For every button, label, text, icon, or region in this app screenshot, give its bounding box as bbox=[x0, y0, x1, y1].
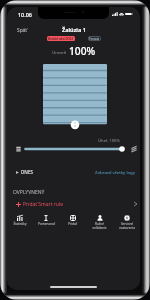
staticText: 100% bbox=[69, 44, 96, 58]
button[interactable]: Blind position bbox=[43, 64, 107, 131]
staticText: 10.06 bbox=[18, 11, 32, 18]
button[interactable]: Pridať Smart rule bbox=[7, 198, 140, 210]
staticText: Terapia bbox=[89, 37, 100, 41]
staticText: Úhel: 100% bbox=[98, 138, 120, 144]
staticText: Pridať Smart rule bbox=[23, 201, 64, 208]
staticText: Žalúzia 1 bbox=[62, 26, 86, 34]
staticText: Štatistiky bbox=[13, 222, 27, 226]
button[interactable]: Detská izba DOLE bbox=[47, 36, 75, 41]
staticText: Servisné nastavenia bbox=[119, 222, 135, 230]
button[interactable]: Servisné nastavenia bbox=[113, 212, 140, 230]
button[interactable]: Pomenovať bbox=[33, 212, 59, 226]
button[interactable]: DNES bbox=[16, 168, 34, 176]
button[interactable]: Slats tilted bbox=[130, 145, 138, 153]
staticText: Pridať bbox=[68, 222, 77, 226]
button[interactable]: Späť bbox=[16, 26, 29, 35]
button[interactable]: Ručné ovládanie bbox=[86, 212, 113, 230]
button[interactable]: Slats closed bbox=[15, 145, 22, 153]
button[interactable]: Štatistiky bbox=[7, 212, 33, 226]
staticText: Ručné ovládanie bbox=[92, 222, 107, 230]
staticText: Pomenovať bbox=[38, 222, 55, 226]
staticText: DNES bbox=[21, 169, 34, 175]
button[interactable]: Pridať bbox=[59, 212, 86, 226]
button[interactable]: Terapia bbox=[88, 36, 101, 41]
staticText: Úroveň bbox=[52, 50, 67, 56]
staticText: OVPLYVNENÝ bbox=[13, 189, 45, 196]
staticText: Detská izba DOLE bbox=[48, 37, 74, 41]
button[interactable]: Zobraziť všetky logy bbox=[95, 168, 135, 176]
